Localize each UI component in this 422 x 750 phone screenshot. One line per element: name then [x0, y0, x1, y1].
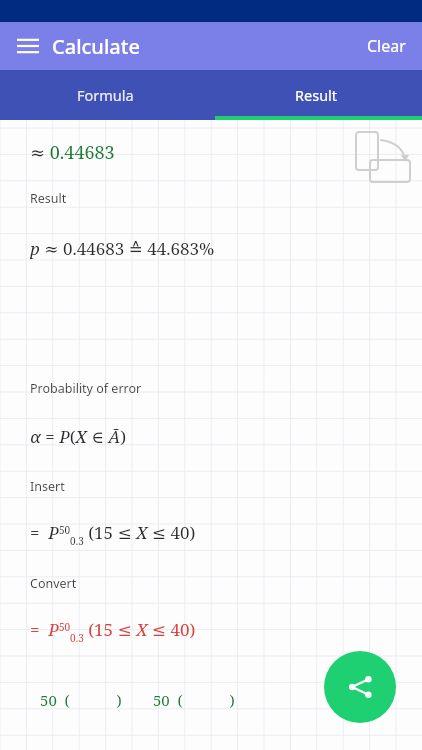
- button[interactable]: Clear: [351, 25, 422, 67]
- button[interactable]: Result: [211, 70, 422, 120]
- button[interactable]: Rotate device: [350, 128, 402, 180]
- staticText: Clear: [367, 35, 406, 57]
- staticText: 50 ( ) 50 ( ): [40, 690, 235, 710]
- staticText: Probability of error: [30, 380, 142, 397]
- staticText: Result: [30, 190, 67, 207]
- staticText: ≈ 0.44683: [30, 140, 115, 165]
- staticText: = P500.3 (15 ≤ X ≤ 40): [30, 521, 196, 547]
- button[interactable]: Share: [324, 651, 396, 723]
- staticText: p ≈ 0.44683 ≙ 44.683%: [30, 237, 215, 260]
- staticText: Convert: [30, 575, 77, 592]
- staticText: Calculate: [52, 33, 140, 60]
- staticText: Formula: [77, 85, 134, 105]
- staticText: = P500.3 (15 ≤ X ≤ 40): [30, 618, 196, 644]
- button[interactable]: Open navigation menu: [10, 28, 46, 64]
- staticText: α = P(X ∈ Ā): [30, 425, 127, 448]
- staticText: Result: [295, 85, 338, 105]
- button[interactable]: Formula: [0, 70, 211, 120]
- staticText: Insert: [30, 478, 65, 495]
